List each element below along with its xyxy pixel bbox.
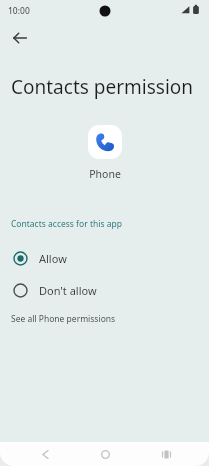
button[interactable]: Back [32,442,58,466]
button[interactable]: Home [92,442,118,466]
staticText: 10:00 [8,5,30,17]
staticText: Contacts permission [11,74,194,100]
button[interactable]: See all Phone permissions [0,308,209,330]
staticText: See all Phone permissions [11,313,116,325]
button[interactable]: Don't allow [0,274,209,306]
staticText: Don't allow [39,283,97,298]
staticText: Contacts access for this app [11,218,122,230]
button[interactable]: Back [4,26,36,50]
staticText: Allow [39,251,67,266]
button[interactable]: Recent apps [153,442,179,466]
staticText: Phone [89,167,121,181]
button[interactable]: Allow [0,242,209,274]
